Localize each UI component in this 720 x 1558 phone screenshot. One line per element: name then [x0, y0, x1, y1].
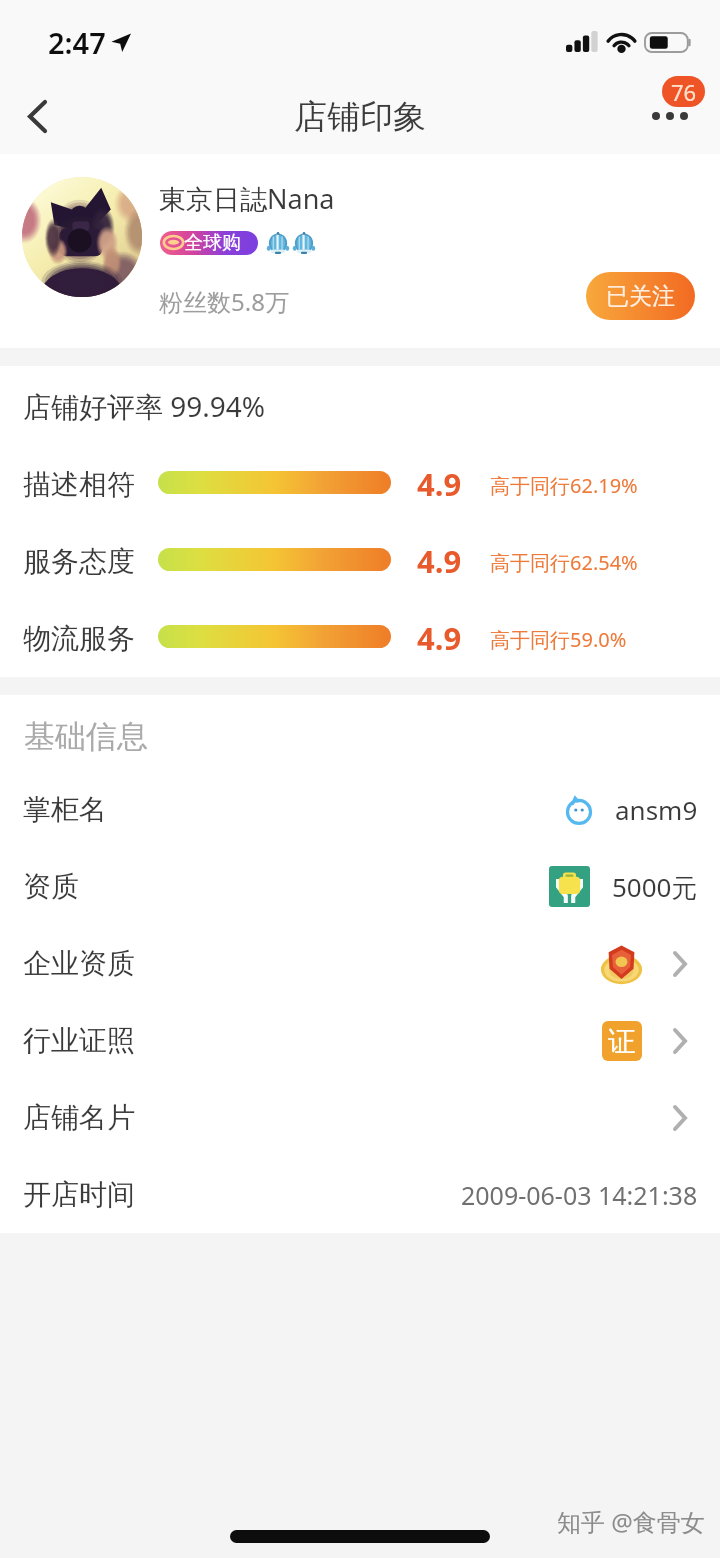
button[interactable]: 资质: [0, 848, 720, 925]
button[interactable]: 开店时间: [0, 1156, 720, 1233]
staticText: 知乎 @食骨女: [557, 1505, 705, 1538]
staticText: ansm9: [615, 792, 698, 827]
staticText: 已关注: [606, 282, 675, 311]
staticText: 证: [608, 1024, 636, 1059]
staticText: 店铺名片: [23, 1100, 135, 1135]
staticText: 描述相符: [23, 467, 135, 502]
staticText: 4.9: [417, 540, 462, 582]
staticText: 4.9: [417, 463, 462, 505]
button[interactable]: More options: [634, 76, 720, 154]
staticText: 店铺好评率 99.94%: [23, 387, 266, 425]
staticText: 高于同行62.19%: [490, 472, 638, 499]
staticText: 企业资质: [23, 946, 135, 981]
staticText: 全球购: [184, 231, 241, 255]
staticText: 高于同行59.0%: [490, 626, 627, 653]
button[interactable]: 企业资质: [0, 925, 720, 1002]
staticText: 开店时间: [23, 1177, 135, 1212]
staticText: 5000元: [612, 869, 698, 905]
staticText: 服务态度: [23, 544, 135, 579]
button[interactable]: 已关注: [586, 272, 695, 320]
staticText: 物流服务: [23, 621, 135, 656]
staticText: 2009-06-03 14:21:38: [461, 1178, 698, 1212]
staticText: 粉丝数5.8万: [159, 285, 289, 318]
button[interactable]: Back: [0, 76, 74, 154]
button[interactable]: 掌柜名: [0, 771, 720, 848]
staticText: 東京日誌Nana: [159, 180, 335, 217]
staticText: 76: [671, 77, 697, 107]
button[interactable]: Shop avatar: [22, 177, 142, 297]
staticText: 4.9: [417, 617, 462, 659]
staticText: 2:47: [48, 23, 106, 62]
button[interactable]: 店铺名片: [0, 1079, 720, 1156]
staticText: 基础信息: [24, 717, 148, 756]
staticText: 高于同行62.54%: [490, 549, 638, 576]
staticText: 资质: [23, 869, 79, 904]
staticText: 行业证照: [23, 1023, 135, 1058]
staticText: 店铺印象: [294, 96, 426, 138]
button[interactable]: 行业证照: [0, 1002, 720, 1079]
staticText: 掌柜名: [23, 792, 107, 827]
